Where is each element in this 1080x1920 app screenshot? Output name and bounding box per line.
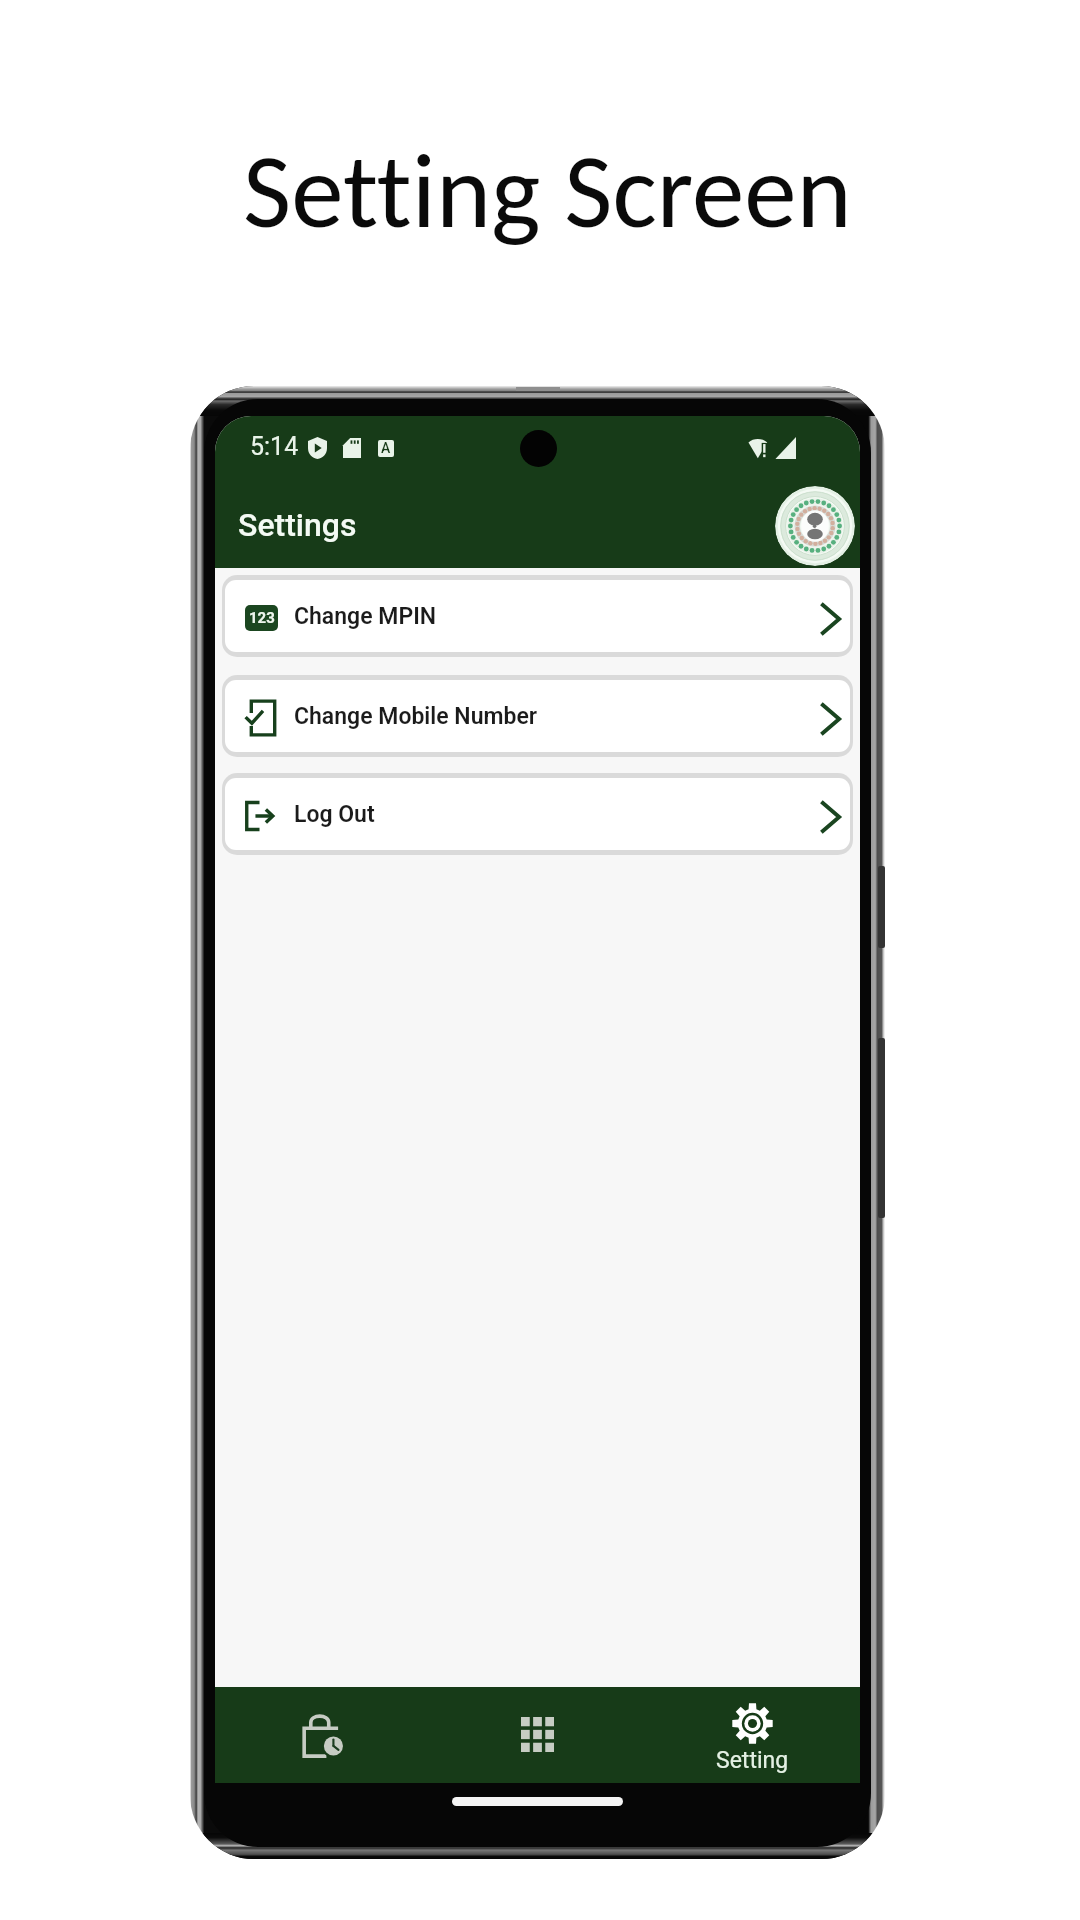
button[interactable]: Setting [645, 1687, 860, 1783]
button[interactable]: 123 [225, 580, 850, 652]
staticText: Setting Screen [243, 127, 852, 255]
staticText: 123 [249, 609, 275, 627]
staticText: Setting [716, 1747, 789, 1774]
staticText: Change MPIN [294, 603, 437, 630]
staticText: A [381, 440, 391, 456]
button[interactable]: Pending requests [215, 1687, 430, 1783]
staticText: 5:14 [250, 432, 299, 461]
staticText: Log Out [294, 801, 375, 828]
button[interactable]: Account logo [775, 486, 855, 566]
staticText: Settings [238, 506, 357, 544]
button[interactable]: Services [430, 1687, 645, 1783]
button[interactable]: Log Out [225, 778, 850, 850]
button[interactable]: Change Mobile Number [225, 680, 850, 752]
staticText: Change Mobile Number [294, 703, 538, 730]
